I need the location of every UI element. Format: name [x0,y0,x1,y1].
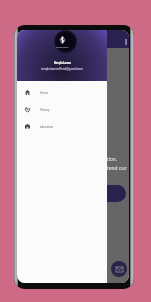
staticText: education [40,125,54,129]
button[interactable]: education [17,118,107,135]
button[interactable]: Home [17,84,107,101]
button[interactable] [95,185,126,202]
staticText: tend our [107,165,127,172]
staticText: tion. [107,156,117,162]
staticText: Home [40,91,49,95]
staticText: History [40,108,50,112]
staticText: SimpleLoans [54,61,71,65]
staticText: simpleloansofficial@gmail.com [41,67,84,71]
button[interactable]: History [17,101,107,118]
staticText: SimpleLoans [56,46,69,49]
button[interactable]: Email [111,261,127,277]
